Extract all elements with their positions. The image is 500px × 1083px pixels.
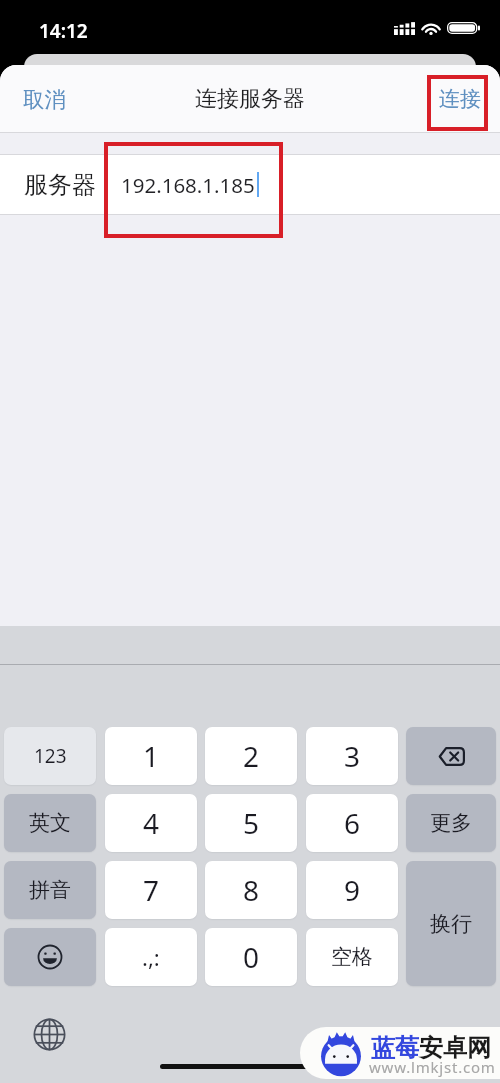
button[interactable]: 7: [105, 861, 197, 919]
button[interactable]: 3: [306, 727, 398, 785]
button[interactable]: 换行: [406, 861, 496, 986]
staticText: 8: [243, 871, 260, 909]
staticText: 蓝莓: [371, 1033, 419, 1063]
staticText: 9: [344, 871, 361, 909]
button[interactable]: 123: [4, 727, 96, 785]
staticText: 英文: [29, 810, 71, 836]
button[interactable]: 4: [105, 794, 197, 852]
staticText: 2: [243, 737, 260, 775]
button[interactable]: 更多: [406, 794, 496, 852]
staticText: 安卓网: [419, 1033, 491, 1063]
button[interactable]: 1: [105, 727, 197, 785]
button[interactable]: 6: [306, 794, 398, 852]
button[interactable]: 空格: [306, 928, 398, 986]
staticText: 5: [243, 804, 260, 842]
button[interactable]: Emoji: [4, 928, 96, 986]
button[interactable]: 8: [205, 861, 297, 919]
staticText: 1: [143, 737, 160, 775]
staticText: .,:: [142, 942, 160, 972]
button[interactable]: 9: [306, 861, 398, 919]
staticText: 3: [344, 737, 361, 775]
staticText: 14:12: [39, 18, 88, 44]
button[interactable]: 连接: [431, 78, 489, 120]
staticText: 连接: [439, 86, 481, 112]
button[interactable]: 0: [205, 928, 297, 986]
staticText: 123: [34, 743, 67, 769]
staticText: 连接服务器: [195, 85, 305, 113]
staticText: 更多: [430, 810, 472, 836]
staticText: 192.168.1.185: [121, 171, 255, 199]
staticText: 4: [143, 804, 160, 842]
button[interactable]: 取消: [10, 78, 79, 121]
button[interactable]: 2: [205, 727, 297, 785]
button[interactable]: 5: [205, 794, 297, 852]
staticText: 0: [243, 938, 260, 976]
staticText: 换行: [430, 911, 472, 937]
button[interactable]: Backspace: [406, 727, 496, 785]
staticText: www.lmkjst.com: [369, 1057, 496, 1077]
staticText: 7: [143, 871, 160, 909]
staticText: 取消: [23, 86, 66, 113]
staticText: 空格: [331, 944, 373, 970]
staticText: 服务器: [24, 170, 96, 200]
staticText: 拼音: [29, 877, 71, 903]
button[interactable]: 拼音: [4, 861, 96, 919]
button[interactable]: Switch keyboard: [29, 1014, 69, 1054]
button[interactable]: 英文: [4, 794, 96, 852]
button[interactable]: .,:: [105, 928, 197, 986]
staticText: 6: [344, 804, 361, 842]
